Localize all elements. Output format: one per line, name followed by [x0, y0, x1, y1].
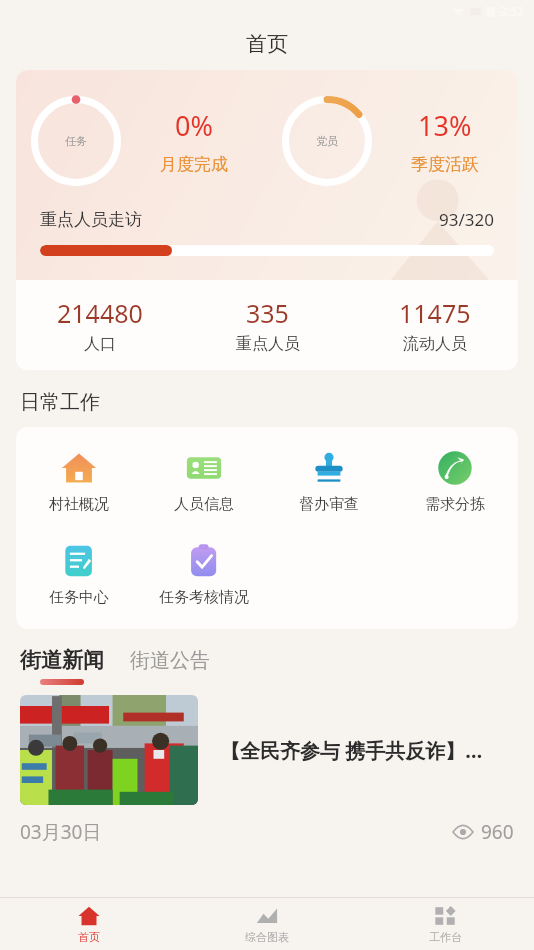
staticText: 0% — [175, 107, 213, 144]
button[interactable]: 【全民齐参与 携手共反诈】… — [0, 695, 534, 845]
staticText: 93/320 — [439, 208, 494, 231]
staticText: 党员 — [316, 134, 338, 148]
staticText: 综合图表 — [245, 930, 289, 944]
staticText: 13% — [418, 107, 472, 144]
staticText: 首页 — [246, 31, 288, 57]
staticText: 960 — [481, 819, 514, 845]
staticText: 11475 — [399, 296, 471, 330]
button[interactable]: 首页 — [0, 898, 178, 950]
staticText: 人口 — [84, 334, 116, 354]
staticText: 【全民齐参与 携手共反诈】… — [220, 737, 483, 764]
button[interactable]: 任务考核情况 — [141, 538, 266, 611]
staticText: 214480 — [57, 296, 143, 330]
staticText: 335 — [246, 296, 289, 330]
button[interactable]: 综合图表 — [178, 898, 356, 950]
staticText: 任务 — [65, 134, 87, 148]
staticText: 月度完成 — [160, 154, 228, 175]
staticText: 重点人员走访 — [40, 209, 142, 230]
button[interactable]: 村社概况 — [16, 445, 141, 518]
staticText: 流动人员 — [403, 334, 467, 354]
button[interactable]: 督办审查 — [266, 445, 392, 518]
staticText: 日常工作 — [20, 390, 100, 415]
staticText: 需求分拣 — [425, 495, 485, 514]
staticText: 人员信息 — [174, 495, 234, 514]
staticText: 首页 — [78, 930, 100, 944]
staticText: 重点人员 — [236, 334, 300, 354]
button[interactable]: 任务中心 — [16, 538, 141, 611]
button[interactable]: 人员信息 — [141, 445, 266, 518]
staticText: 任务考核情况 — [159, 588, 249, 607]
staticText: 街道公告 — [130, 648, 210, 673]
staticText: 督办审查 — [299, 495, 359, 514]
staticText: 03月30日 — [20, 819, 102, 845]
staticText: 季度活跃 — [411, 154, 479, 175]
staticText: 工作台 — [429, 930, 462, 944]
button[interactable]: 工作台 — [356, 898, 534, 950]
button[interactable]: 街道公告 — [130, 647, 210, 673]
button[interactable]: 街道新闻 — [20, 647, 104, 685]
staticText: 任务中心 — [49, 588, 109, 607]
staticText: 村社概况 — [49, 495, 109, 514]
button[interactable]: 需求分拣 — [392, 445, 518, 518]
staticText: 街道新闻 — [20, 647, 104, 673]
